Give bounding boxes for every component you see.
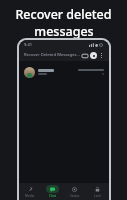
staticText: 9:41 (24, 42, 32, 47)
button[interactable]: Settings (89, 51, 98, 60)
staticText: Lock (94, 194, 101, 198)
button[interactable]: Media (19, 183, 41, 200)
staticText: Media (25, 194, 35, 198)
button[interactable]: Status (63, 183, 86, 200)
staticText: messages (34, 23, 94, 40)
button[interactable]: Archive (80, 51, 89, 60)
staticText: Recover Deleted Messages A... (24, 52, 80, 58)
button[interactable]: Lock (86, 183, 109, 200)
staticText: Status (70, 194, 80, 198)
button[interactable]: More options (98, 52, 105, 59)
staticText: Recover deleted (15, 6, 112, 23)
button[interactable]: Chat (41, 183, 63, 200)
button[interactable] (19, 63, 109, 81)
staticText: Chat (49, 194, 56, 198)
